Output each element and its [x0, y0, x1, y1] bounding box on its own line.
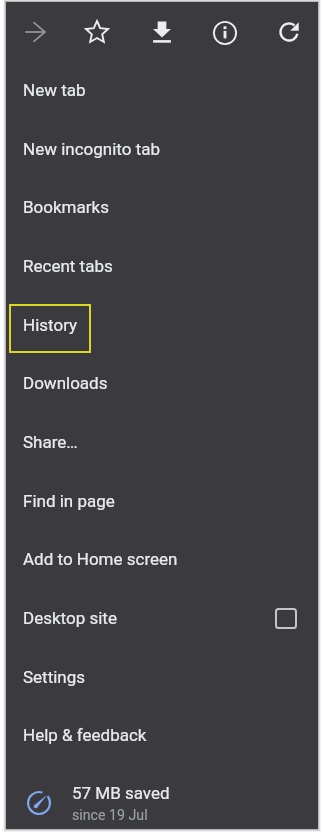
button[interactable]: 57 MB saved [6, 770, 318, 829]
button[interactable]: Download [140, 10, 184, 54]
button[interactable]: New incognito tab [6, 120, 318, 179]
button[interactable]: Page info [203, 11, 247, 55]
button[interactable]: Add to Home screen [6, 530, 318, 589]
staticText: Downloads [23, 373, 108, 393]
staticText: since 19 Jul [72, 807, 148, 824]
staticText: Recent tabs [23, 256, 113, 276]
staticText: New incognito tab [23, 139, 160, 159]
button[interactable]: Find in page [6, 472, 318, 531]
button[interactable]: Bookmarks [6, 178, 318, 237]
button[interactable]: Recent tabs [6, 237, 318, 296]
button[interactable]: Share… [6, 413, 318, 472]
button[interactable]: Bookmark [75, 10, 119, 54]
staticText: Help & feedback [23, 725, 147, 745]
staticText: New tab [23, 80, 86, 100]
staticText: 57 MB saved [72, 783, 170, 803]
button[interactable]: Desktop site [6, 589, 318, 648]
button[interactable]: Forward [13, 10, 57, 54]
button[interactable]: Downloads [6, 354, 318, 413]
staticText: Find in page [23, 491, 115, 511]
staticText: Add to Home screen [23, 549, 178, 569]
staticText: History [23, 315, 78, 335]
button[interactable]: New tab [6, 61, 318, 120]
staticText: Share… [23, 432, 78, 452]
button[interactable]: Reload [267, 10, 311, 54]
staticText: Bookmarks [23, 197, 109, 217]
button[interactable]: History [6, 296, 318, 355]
staticText: Desktop site [23, 608, 117, 628]
button[interactable]: Settings [6, 648, 318, 707]
button[interactable]: Help & feedback [6, 706, 318, 765]
staticText: Settings [23, 667, 86, 687]
